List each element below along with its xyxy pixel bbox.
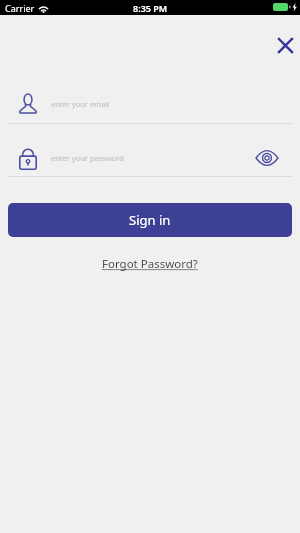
button[interactable]: enter your email (0, 94, 300, 113)
staticText: Sign in (129, 211, 171, 229)
button[interactable]: enter your password (0, 146, 300, 170)
button[interactable] (256, 151, 278, 165)
button[interactable]: Sign in (8, 203, 292, 237)
staticText: 8:35 PM (133, 2, 168, 14)
staticText: Carrier (5, 2, 35, 14)
button[interactable] (270, 30, 300, 60)
button[interactable]: Forgot Password? (102, 256, 198, 272)
staticText: enter your email (51, 99, 110, 109)
staticText: enter your password (51, 153, 124, 163)
